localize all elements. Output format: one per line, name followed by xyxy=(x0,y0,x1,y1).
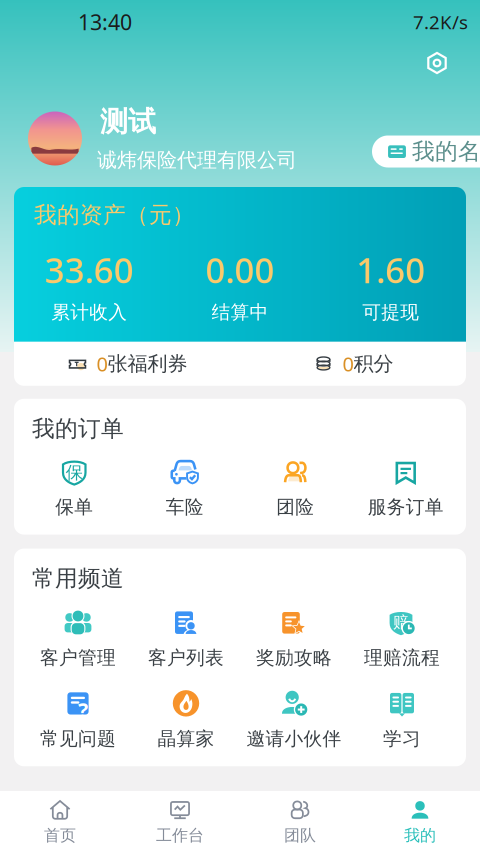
staticText: 我的订单 xyxy=(32,415,124,443)
button[interactable]: 工作台 xyxy=(120,799,240,845)
staticText: 0.00 xyxy=(205,247,274,293)
button[interactable]: 保 xyxy=(19,457,129,518)
button[interactable]: 服务订单 xyxy=(350,457,461,518)
staticText: 理赔流程 xyxy=(364,646,440,669)
staticText: 首页 xyxy=(44,826,76,845)
staticText: 邀请小伙伴 xyxy=(246,727,341,750)
staticText: 1.60 xyxy=(356,247,425,293)
staticText: 学习 xyxy=(383,727,421,750)
button[interactable]: 设置 xyxy=(418,44,456,82)
staticText: 奖励攻略 xyxy=(256,646,332,669)
staticText: 积分 xyxy=(353,351,393,376)
staticText: 累计收入 xyxy=(51,301,127,324)
staticText: 客户列表 xyxy=(148,646,224,669)
staticText: 0 xyxy=(96,350,107,377)
staticText: 0 xyxy=(342,350,353,377)
staticText: 车险 xyxy=(166,496,204,518)
button[interactable]: 首页 xyxy=(0,799,120,845)
staticText: 赔 xyxy=(393,612,409,632)
staticText: 团险 xyxy=(276,496,314,518)
staticText: 我的名片 xyxy=(412,138,480,165)
staticText: 张福利券 xyxy=(107,351,187,376)
staticText: 晶算家 xyxy=(157,727,214,750)
button[interactable]: 0 xyxy=(240,350,466,377)
staticText: 测试 xyxy=(100,104,156,139)
button[interactable]: 晶算家 xyxy=(132,687,240,750)
staticText: 常见问题 xyxy=(40,727,116,750)
button[interactable]: 团险 xyxy=(240,457,350,518)
staticText: 常用频道 xyxy=(32,565,124,592)
staticText: 结算中 xyxy=(211,301,268,324)
staticText: ? xyxy=(78,696,88,724)
button[interactable]: 客户管理 xyxy=(24,606,132,669)
button[interactable]: 邀请小伙伴 xyxy=(240,687,348,750)
button[interactable]: 车险 xyxy=(129,457,240,518)
staticText: 团队 xyxy=(284,826,316,845)
button[interactable]: 学习 xyxy=(348,687,456,750)
button[interactable]: 我的 xyxy=(360,799,480,845)
button[interactable]: 客户列表 xyxy=(132,606,240,669)
button[interactable]: 奖励攻略 xyxy=(240,606,348,669)
staticText: 客户管理 xyxy=(40,646,116,669)
staticText: 7.2K/s xyxy=(413,10,468,34)
staticText: 我的资产（元） xyxy=(34,201,195,229)
staticText: 13:40 xyxy=(78,8,132,36)
staticText: 保单 xyxy=(55,496,93,518)
button[interactable]: 0 xyxy=(14,350,240,377)
staticText: 我的 xyxy=(404,826,436,845)
button[interactable]: 赔 xyxy=(348,606,456,669)
staticText: 服务订单 xyxy=(368,496,444,518)
button[interactable]: 团队 xyxy=(240,799,360,845)
button[interactable]: 我的名片 xyxy=(372,135,480,167)
button[interactable]: ? xyxy=(24,687,132,750)
staticText: 33.60 xyxy=(45,247,134,293)
staticText: 可提现 xyxy=(362,301,419,324)
staticText: 保 xyxy=(66,462,83,483)
staticText: 工作台 xyxy=(156,826,204,845)
staticText: 诚炜保险代理有限公司 xyxy=(97,148,297,172)
